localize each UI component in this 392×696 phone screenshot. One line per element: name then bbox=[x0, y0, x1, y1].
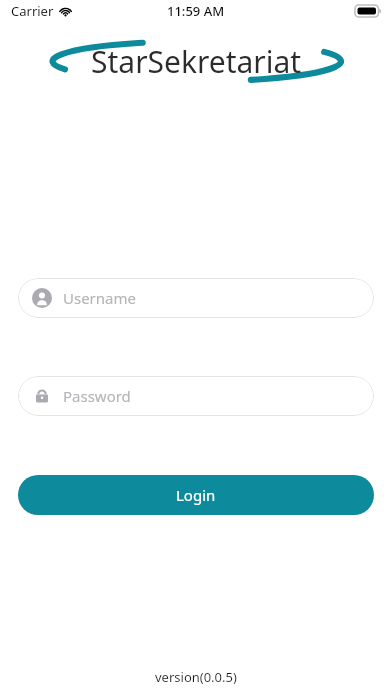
staticText: 11:59 AM bbox=[167, 2, 225, 20]
staticText: Carrier bbox=[11, 2, 54, 20]
other: Password bbox=[32, 386, 52, 406]
staticText: StarSekretariat bbox=[91, 41, 302, 82]
staticText: Login bbox=[176, 485, 216, 505]
staticText: version(0.0.5) bbox=[155, 668, 237, 686]
other: Username bbox=[32, 288, 52, 308]
button[interactable]: Username bbox=[18, 278, 374, 318]
button[interactable]: Password bbox=[18, 376, 374, 416]
staticText: Username bbox=[63, 288, 136, 308]
button[interactable]: Login bbox=[18, 475, 374, 515]
staticText: Password bbox=[63, 386, 131, 406]
